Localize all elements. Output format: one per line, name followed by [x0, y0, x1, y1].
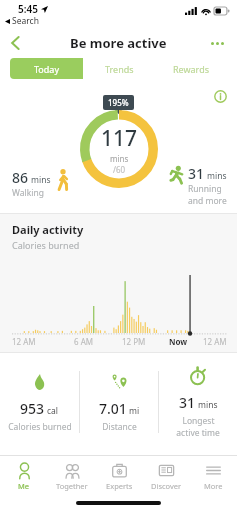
button[interactable]: More — [190, 456, 237, 496]
staticText: 117 — [101, 124, 138, 153]
staticText: 5:45 — [18, 2, 38, 16]
staticText: Longest — [182, 415, 215, 427]
staticText: mins — [207, 170, 227, 182]
staticText: /60 — [113, 164, 126, 175]
staticText: Rewards — [173, 63, 210, 75]
staticText: mins — [110, 153, 129, 164]
button[interactable]: Rewards — [155, 58, 227, 79]
staticText: Running — [188, 183, 222, 195]
staticText: Be more active — [70, 34, 167, 52]
staticText: 31 — [179, 393, 196, 412]
staticText: and more — [188, 195, 227, 207]
button[interactable]: Discover — [143, 456, 190, 496]
staticText: active time — [176, 427, 220, 439]
staticText: Me — [18, 481, 30, 491]
staticText: cal — [47, 405, 59, 417]
staticText: Together — [56, 481, 88, 491]
button[interactable]: Today — [10, 58, 83, 79]
button[interactable]: Together — [48, 456, 96, 496]
button[interactable]: Experts — [96, 456, 143, 496]
staticText: 12 AM — [203, 336, 227, 347]
staticText: Experts — [106, 481, 133, 491]
button[interactable]: 31 — [159, 353, 237, 451]
staticText: mi — [129, 405, 140, 417]
staticText: 86 — [12, 168, 29, 187]
staticText: Today — [34, 63, 59, 75]
staticText: 12 AM — [12, 336, 36, 347]
staticText: mins — [198, 399, 218, 411]
staticText: mins — [31, 174, 51, 186]
staticText: Search — [12, 15, 39, 27]
button[interactable]: Back — [4, 31, 28, 55]
staticText: Discover — [151, 481, 182, 491]
staticText: Calories burned — [8, 421, 72, 433]
button[interactable]: Trends — [83, 58, 155, 79]
staticText: 7.01 — [99, 399, 127, 418]
staticText: Distance — [102, 421, 137, 433]
button[interactable]: 953 — [0, 353, 79, 451]
button[interactable]: More options — [205, 31, 229, 55]
staticText: 195% — [108, 97, 129, 108]
staticText: Daily activity — [12, 222, 84, 237]
staticText: Now — [169, 336, 188, 347]
staticText: Calories burned — [12, 239, 80, 251]
staticText: 6 AM — [74, 336, 94, 347]
staticText: 953 — [20, 399, 45, 418]
button[interactable]: Info — [211, 87, 229, 105]
staticText: 12 PM — [122, 336, 146, 347]
staticText: 31 — [188, 164, 205, 183]
staticText: More — [204, 481, 223, 491]
button[interactable]: Me — [0, 456, 48, 496]
button[interactable]: 7.01 — [80, 353, 158, 451]
staticText: Walking — [12, 187, 44, 199]
staticText: Trends — [105, 63, 134, 75]
